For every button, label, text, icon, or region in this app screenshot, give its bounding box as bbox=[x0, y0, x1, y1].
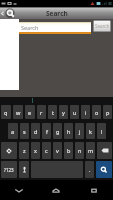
staticText: o bbox=[95, 109, 99, 116]
staticText: Search bbox=[21, 24, 39, 31]
staticText: b bbox=[67, 147, 71, 154]
button[interactable]: a bbox=[8, 123, 18, 139]
button[interactable]: Search bbox=[94, 21, 110, 31]
staticText: w bbox=[16, 109, 21, 116]
staticText: t bbox=[52, 109, 54, 116]
button[interactable]: v bbox=[53, 142, 62, 159]
staticText: n bbox=[78, 147, 82, 154]
button[interactable]: z bbox=[19, 142, 29, 159]
button[interactable]: c bbox=[42, 142, 51, 159]
button[interactable]: ?123 bbox=[1, 161, 17, 178]
button[interactable]: b bbox=[64, 142, 73, 159]
staticText: j bbox=[79, 128, 81, 135]
button[interactable]: q bbox=[1, 105, 11, 119]
button[interactable]: . bbox=[85, 161, 94, 178]
staticText: g bbox=[56, 128, 60, 135]
button[interactable]: t bbox=[48, 105, 57, 119]
button[interactable] bbox=[1, 142, 17, 159]
button[interactable]: m bbox=[86, 142, 95, 159]
button[interactable] bbox=[97, 142, 112, 159]
button[interactable]: s bbox=[20, 123, 29, 139]
button[interactable]: r bbox=[37, 105, 46, 119]
staticText: u bbox=[73, 109, 77, 116]
staticText: . bbox=[89, 166, 91, 173]
button[interactable]: y bbox=[59, 105, 68, 119]
staticText: x bbox=[34, 147, 37, 154]
button[interactable]: k bbox=[86, 123, 95, 139]
button[interactable]: x bbox=[31, 142, 40, 159]
button[interactable]: i bbox=[81, 105, 90, 119]
staticText: Search bbox=[46, 9, 68, 18]
button[interactable]: p bbox=[103, 105, 112, 119]
button[interactable]: u bbox=[70, 105, 79, 119]
staticText: p bbox=[106, 109, 110, 116]
button[interactable] bbox=[96, 161, 112, 178]
staticText: c bbox=[45, 147, 48, 154]
staticText: r bbox=[40, 109, 43, 116]
staticText: e bbox=[28, 109, 32, 116]
staticText: d bbox=[34, 128, 38, 135]
button[interactable]: Search bbox=[19, 22, 91, 34]
staticText: z bbox=[23, 147, 26, 154]
button[interactable]: Navigate up bbox=[0, 7, 16, 19]
button[interactable]: d bbox=[31, 123, 40, 139]
button[interactable]: o bbox=[92, 105, 101, 119]
staticText: s bbox=[23, 128, 26, 135]
button[interactable]: Back bbox=[0, 180, 37, 200]
button[interactable]: e bbox=[25, 105, 35, 119]
button[interactable]: f bbox=[42, 123, 51, 139]
staticText: Search bbox=[95, 23, 110, 29]
button[interactable]: j bbox=[75, 123, 84, 139]
button[interactable]: h bbox=[64, 123, 73, 139]
staticText: y bbox=[62, 109, 65, 116]
staticText: h bbox=[67, 128, 71, 135]
staticText: i bbox=[85, 109, 87, 116]
staticText: ?123 bbox=[4, 167, 14, 173]
staticText: k bbox=[89, 128, 92, 135]
staticText: q bbox=[4, 109, 8, 116]
button[interactable] bbox=[19, 161, 29, 178]
button[interactable]: Recent apps bbox=[75, 180, 113, 200]
staticText: a bbox=[11, 128, 15, 135]
button[interactable]: g bbox=[53, 123, 62, 139]
staticText: f bbox=[46, 128, 48, 135]
staticText: v bbox=[56, 147, 59, 154]
button[interactable]: Home bbox=[37, 180, 75, 200]
staticText: m bbox=[88, 147, 94, 154]
button[interactable]: n bbox=[75, 142, 84, 159]
button[interactable]: l bbox=[97, 123, 106, 139]
staticText: l bbox=[101, 128, 103, 135]
button[interactable]: w bbox=[13, 105, 23, 119]
